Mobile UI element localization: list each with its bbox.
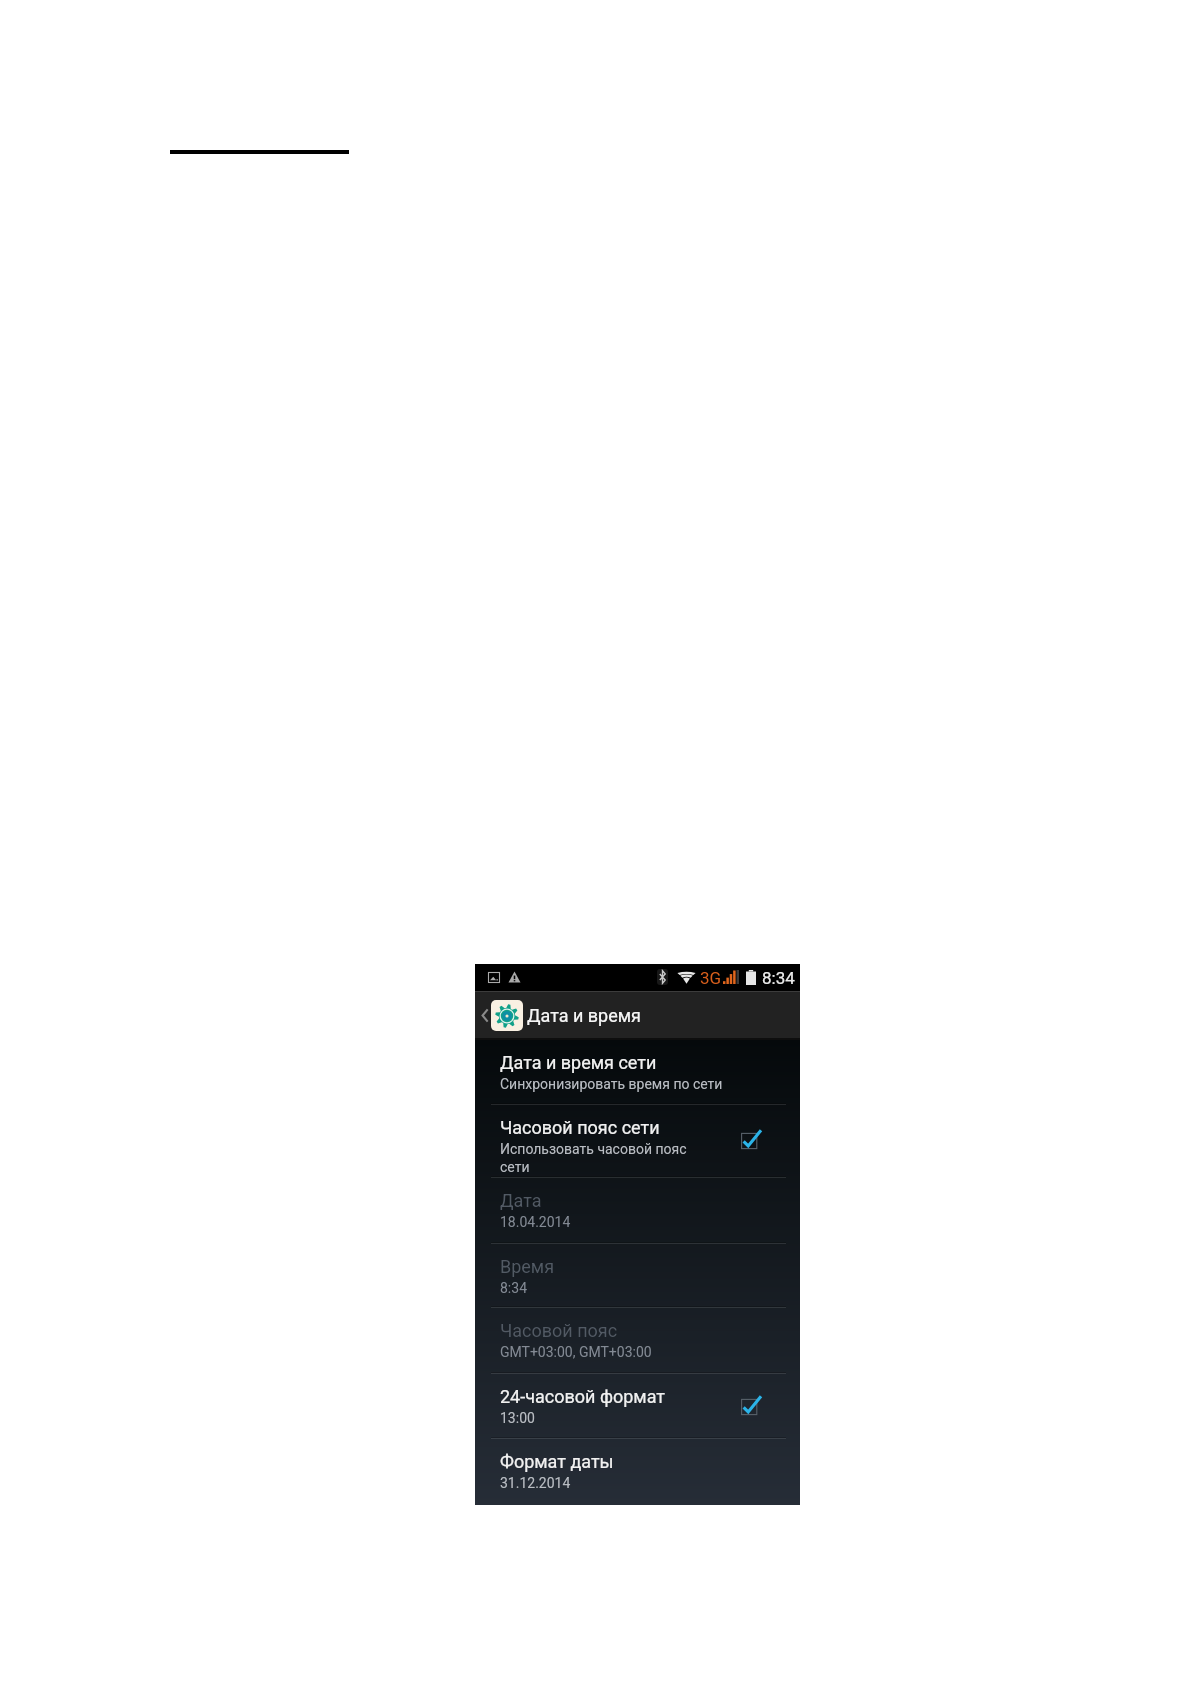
button[interactable]: Часовой пояс сети — [475, 1105, 800, 1176]
button[interactable]: Дата и время сети — [475, 1040, 800, 1103]
button[interactable]: 24-часовой формат — [475, 1374, 800, 1437]
staticText: Дата — [500, 1190, 542, 1211]
staticText: GMT+03:00, GMT+03:00 — [500, 1344, 652, 1360]
staticText: Формат даты — [500, 1451, 614, 1472]
staticText: Дата и время — [527, 1005, 641, 1026]
staticText: 31.12.2014 — [500, 1475, 571, 1491]
button[interactable]: Часовой пояс — [475, 1308, 800, 1372]
button[interactable]: Формат даты — [475, 1439, 800, 1502]
button[interactable]: Toggle — [735, 1128, 771, 1154]
staticText: 18.04.2014 — [500, 1214, 571, 1230]
staticText: Дата и время сети — [500, 1052, 657, 1073]
button[interactable]: Toggle — [735, 1394, 771, 1420]
staticText: 8:34 — [762, 968, 795, 986]
button[interactable]: Дата — [475, 1178, 800, 1242]
staticText: Время — [500, 1256, 555, 1277]
staticText: 13:00 — [500, 1410, 535, 1426]
staticText: Синхронизировать время по сети — [500, 1076, 723, 1092]
staticText: 3G — [700, 968, 722, 986]
staticText: 8:34 — [500, 1280, 527, 1296]
staticText: Часовой пояс — [500, 1320, 618, 1341]
button[interactable]: Navigate up — [475, 992, 649, 1038]
staticText: Использовать часовой пояс сети — [500, 1141, 712, 1176]
button[interactable]: Время — [475, 1244, 800, 1306]
staticText: Часовой пояс сети — [500, 1117, 660, 1138]
staticText: 24-часовой формат — [500, 1386, 665, 1407]
